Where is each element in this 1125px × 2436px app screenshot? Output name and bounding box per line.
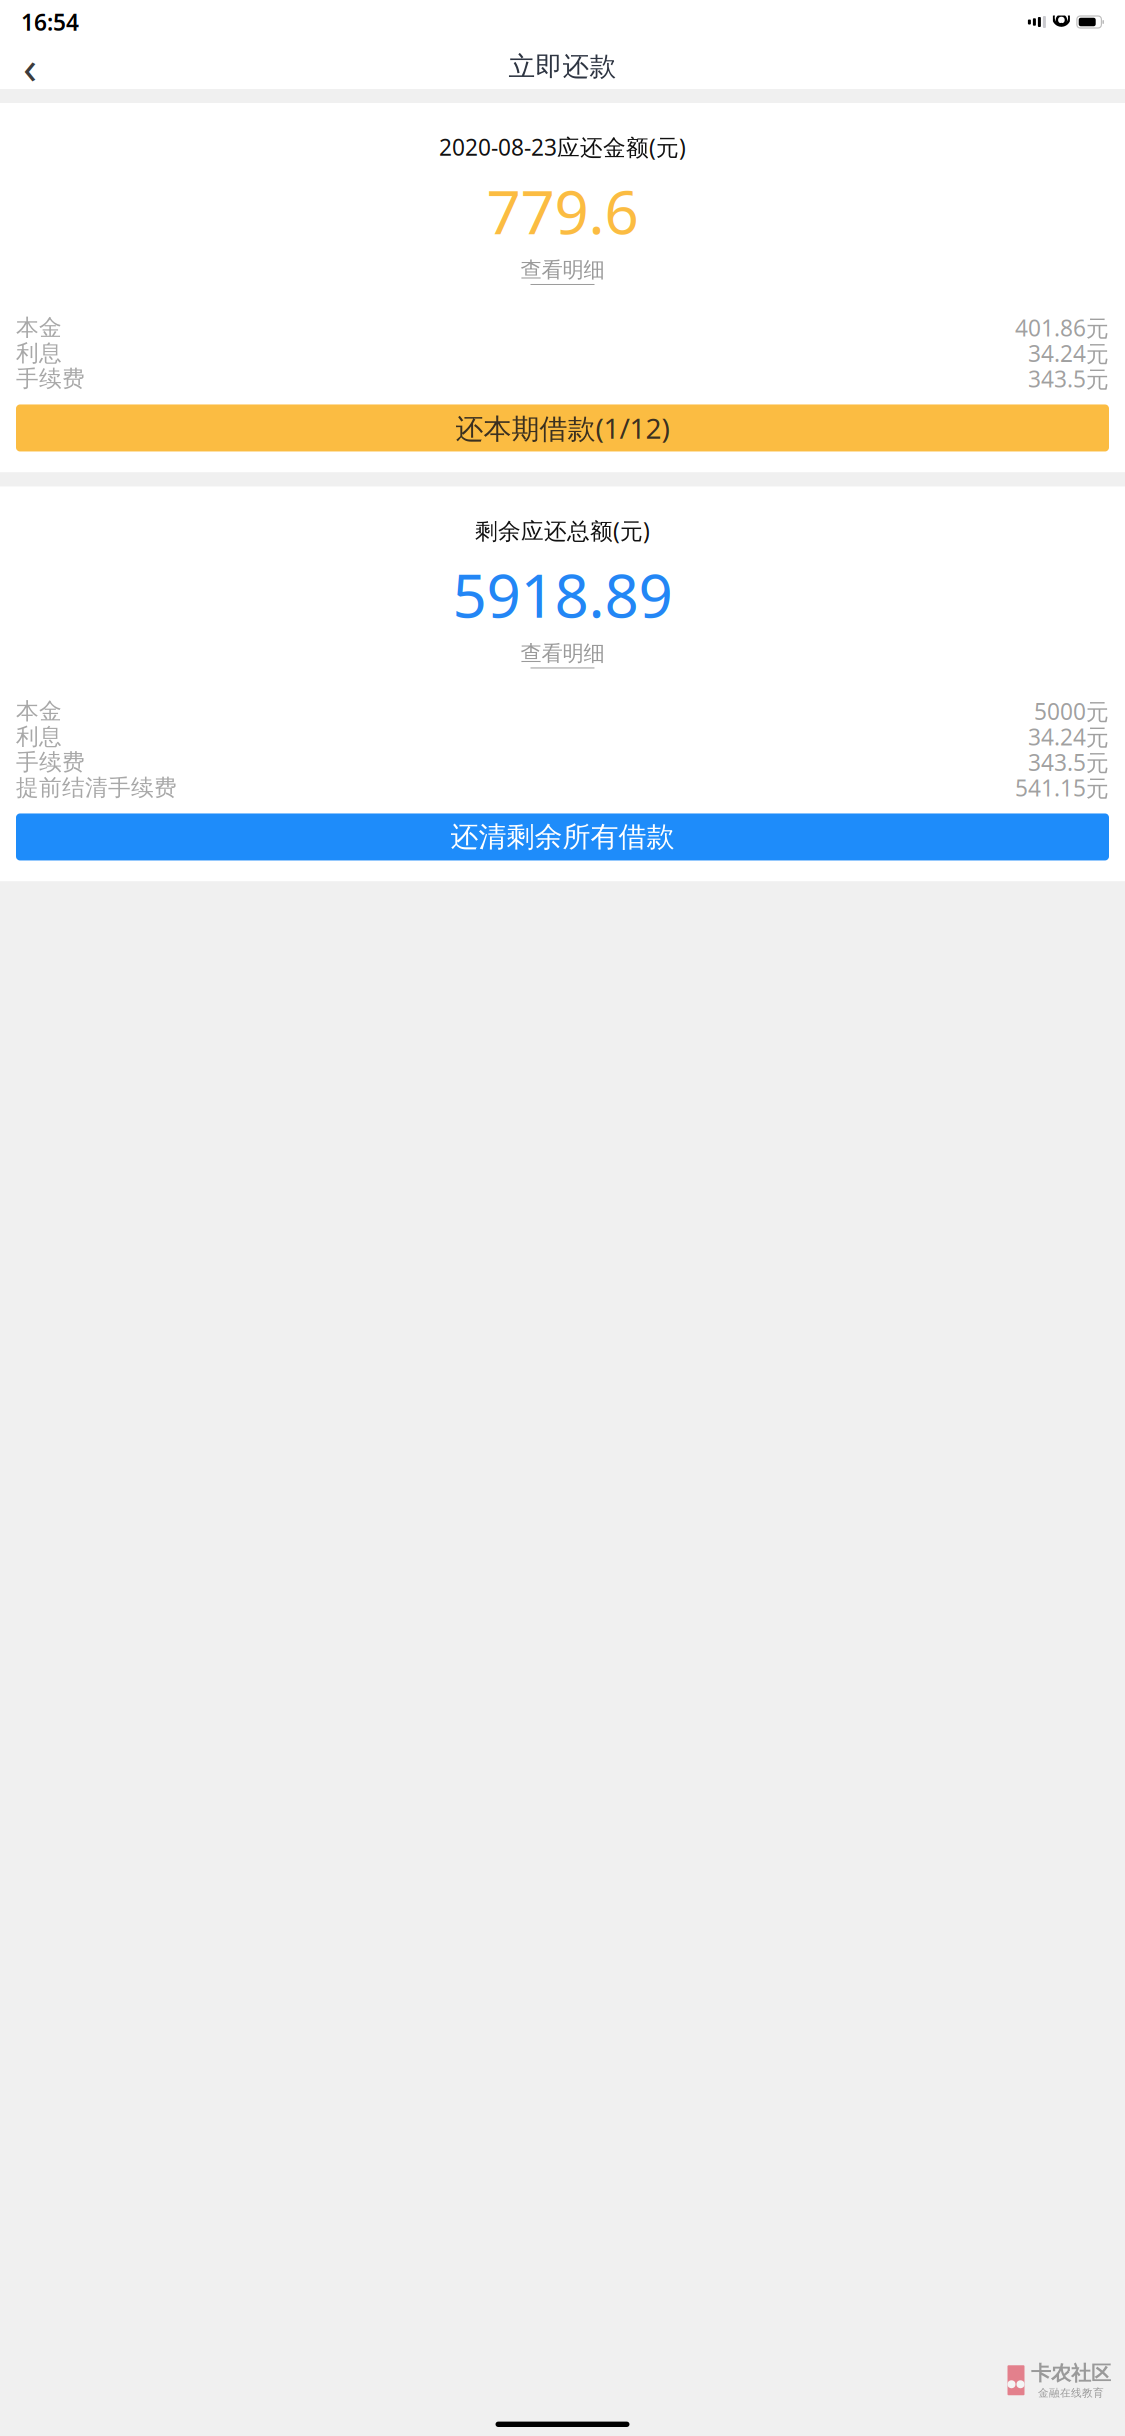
staticText: 5918.89	[452, 555, 672, 634]
button[interactable]: 还本期借款(1/12)	[16, 404, 1109, 451]
staticText: 16:54	[21, 7, 79, 37]
staticText: 779.6	[486, 171, 638, 251]
staticText: 本金	[16, 314, 62, 342]
staticText: 立即还款	[508, 50, 616, 83]
staticText: 还本期借款(1/12)	[455, 409, 669, 447]
staticText: 手续费	[16, 365, 85, 393]
staticText: 查看明细	[520, 640, 604, 666]
staticText: 本金	[16, 697, 62, 725]
staticText: 343.5元	[1028, 747, 1109, 777]
staticText: 金融在线教育	[1038, 2386, 1104, 2400]
staticText: 2020-08-23应还金额(元)	[439, 132, 686, 162]
button[interactable]: Back	[8, 44, 52, 88]
staticText: 541.15元	[1015, 773, 1109, 803]
staticText: 34.24元	[1028, 722, 1109, 752]
button[interactable]: 还清剩余所有借款	[16, 813, 1109, 860]
staticText: 401.86元	[1015, 313, 1109, 343]
button[interactable]: 查看明细	[520, 257, 604, 285]
staticText: 手续费	[16, 748, 85, 776]
staticText: 5000元	[1034, 696, 1109, 726]
staticText: 查看明细	[520, 257, 604, 283]
staticText: 34.24元	[1028, 338, 1109, 368]
staticText: 还清剩余所有借款	[450, 820, 674, 854]
staticText: ‹	[23, 36, 37, 97]
staticText: 剩余应还总额(元)	[475, 515, 650, 546]
staticText: 卡农社区	[1031, 2361, 1111, 2385]
staticText: 343.5元	[1028, 364, 1109, 394]
staticText: 利息	[16, 339, 62, 367]
staticText: 利息	[16, 723, 62, 751]
button[interactable]: 查看明细	[520, 640, 604, 668]
staticText: 提前结清手续费	[16, 774, 177, 802]
